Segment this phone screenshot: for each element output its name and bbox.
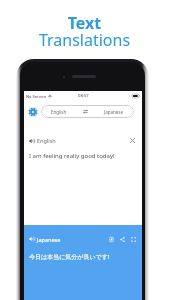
button[interactable]: Settings [27, 106, 39, 118]
staticText: 08:57 [78, 93, 89, 99]
staticText: 今日は本当に気分が良いです! [29, 253, 110, 261]
staticText: English [37, 137, 56, 144]
staticText: No Service [26, 94, 47, 99]
staticText: Japanese [37, 236, 61, 243]
button[interactable]: English [41, 105, 134, 118]
staticText: Translations [0, 29, 169, 51]
staticText: Text [0, 12, 169, 34]
button[interactable]: Copy [107, 235, 115, 243]
staticText: I am feeling really good today! [29, 152, 115, 160]
button[interactable]: Share [118, 235, 126, 243]
button[interactable]: Full screen [129, 235, 137, 243]
staticText: Japanese [104, 109, 124, 115]
button[interactable]: Clear text [128, 136, 137, 145]
staticText: English [51, 109, 67, 115]
